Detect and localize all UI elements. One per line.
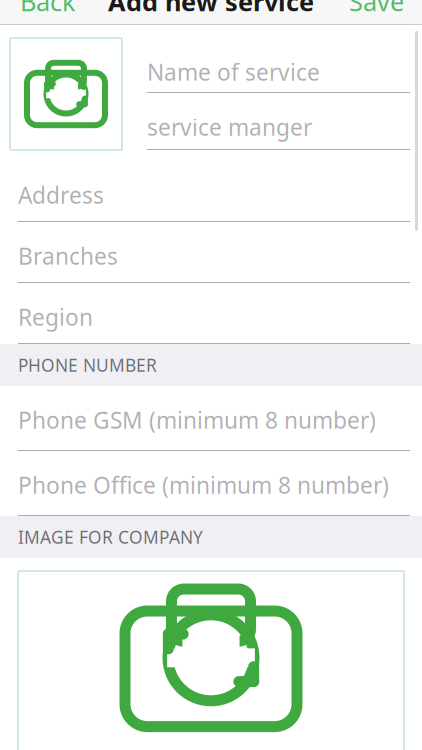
button[interactable]: Phone Office (minimum 8 number) <box>0 451 422 516</box>
button[interactable]: Save <box>335 0 422 26</box>
button[interactable]: Phone GSM (minimum 8 number) <box>0 386 422 451</box>
button[interactable]: service manger <box>135 93 422 150</box>
staticText: Name of service <box>147 57 320 87</box>
staticText: Back <box>20 0 76 18</box>
staticText: IMAGE FOR COMPANY <box>18 525 203 548</box>
staticText: PHONE NUMBER <box>18 353 157 376</box>
staticText: Add new service <box>108 0 314 18</box>
button[interactable]: Add company image <box>0 571 422 750</box>
button[interactable]: Address <box>0 161 422 222</box>
button[interactable]: Region <box>0 283 422 344</box>
button[interactable]: Name of service <box>135 38 422 93</box>
button[interactable]: Branches <box>0 222 422 283</box>
staticText: Save <box>349 0 404 18</box>
staticText: service manger <box>147 112 312 142</box>
staticText: Address <box>18 180 104 210</box>
staticText: Branches <box>18 241 118 271</box>
staticText: Phone Office (minimum 8 number) <box>18 470 389 500</box>
button[interactable]: Add service image <box>10 38 122 150</box>
staticText: Phone GSM (minimum 8 number) <box>18 405 376 435</box>
staticText: Region <box>18 302 93 332</box>
button[interactable]: Back <box>0 0 90 26</box>
